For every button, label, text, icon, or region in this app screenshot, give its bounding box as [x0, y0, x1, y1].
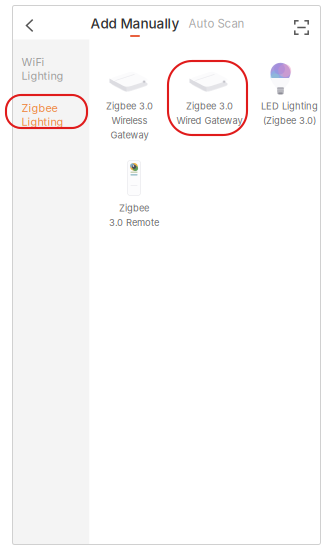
staticText: Zigbee 3.0	[186, 100, 233, 112]
button[interactable]: Zigbee	[12, 89, 89, 142]
staticText: Add Manually	[90, 15, 179, 32]
staticText: WiFi	[21, 55, 44, 69]
staticText: Auto Scan	[188, 17, 244, 30]
staticText: (Zigbee 3.0)	[263, 115, 316, 126]
staticText: Gateway	[110, 129, 148, 141]
staticText: LED Lighting	[261, 100, 318, 112]
staticText: Zigbee	[21, 101, 57, 115]
button[interactable]: WiFi	[12, 39, 89, 89]
button[interactable]: Zigbee 3.0	[169, 43, 249, 145]
button[interactable]: Zigbee 3.0	[89, 43, 169, 145]
staticText: Zigbee	[119, 202, 149, 214]
staticText: 3.0 Remote	[109, 217, 159, 228]
button[interactable]: Scan	[286, 5, 316, 39]
button[interactable]: Add Manually	[90, 5, 179, 39]
staticText: Wireless	[111, 115, 147, 126]
button[interactable]: Auto Scan	[179, 5, 244, 39]
button[interactable]: Back	[17, 5, 41, 39]
staticText: Lighting	[21, 115, 63, 128]
button[interactable]: Zigbee	[94, 145, 174, 247]
staticText: Wired Gateway	[176, 115, 242, 126]
button[interactable]: LED Lighting	[249, 43, 329, 145]
staticText: Lighting	[21, 69, 63, 82]
staticText: Zigbee 3.0	[106, 100, 153, 112]
